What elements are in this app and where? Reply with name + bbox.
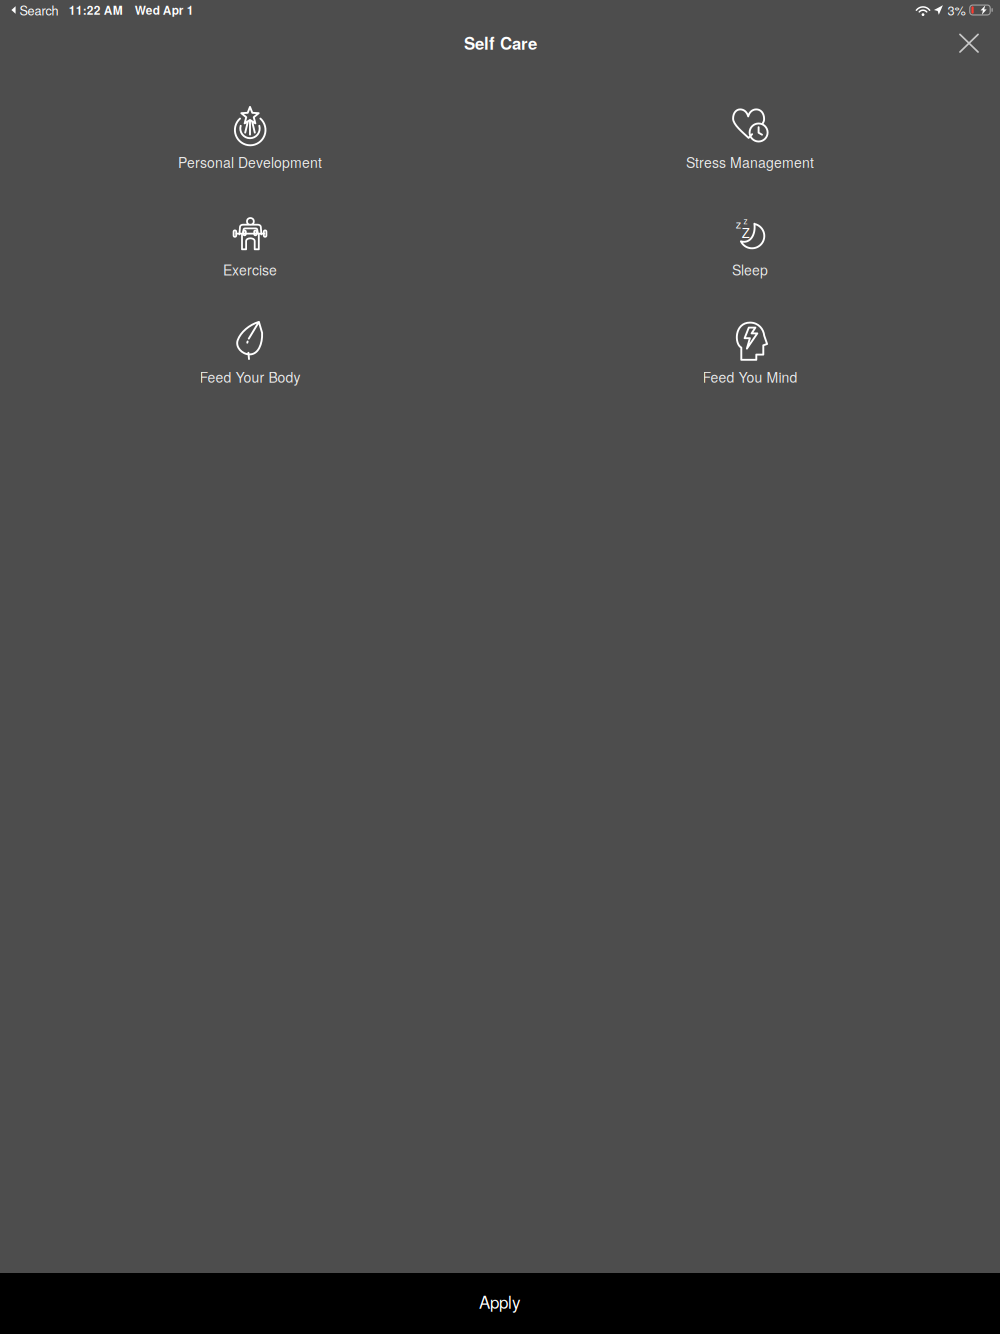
button[interactable]: z bbox=[500, 211, 1000, 319]
staticText: Wed Apr 1 bbox=[135, 1, 194, 18]
staticText: Z bbox=[742, 223, 750, 242]
button[interactable]: Close bbox=[947, 20, 991, 64]
staticText: Feed Your Body bbox=[199, 367, 300, 387]
staticText: 11:22 AM bbox=[69, 1, 123, 18]
staticText: Self Care bbox=[464, 31, 537, 55]
staticText: Stress Management bbox=[686, 152, 814, 172]
staticText: Apply bbox=[479, 1289, 521, 1314]
staticText: 3% bbox=[947, 1, 965, 19]
button[interactable]: Apply bbox=[0, 1273, 1000, 1334]
staticText: Sleep bbox=[732, 259, 768, 279]
button[interactable]: Exercise bbox=[0, 211, 500, 319]
staticText: z bbox=[736, 216, 742, 232]
button[interactable]: Stress Management bbox=[500, 104, 1000, 211]
button[interactable]: Personal Development bbox=[0, 104, 500, 211]
staticText: Feed You Mind bbox=[702, 367, 797, 387]
staticText: z bbox=[743, 215, 747, 226]
staticText: Exercise bbox=[223, 259, 277, 279]
button[interactable]: Feed Your Body bbox=[0, 319, 500, 426]
button[interactable]: Feed You Mind bbox=[500, 319, 1000, 426]
staticText: Personal Development bbox=[178, 152, 322, 172]
staticText: Search bbox=[19, 1, 58, 19]
